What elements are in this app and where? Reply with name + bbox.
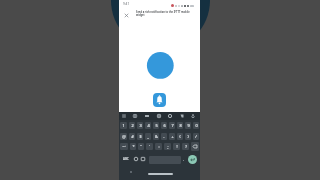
button[interactable]: Emoji bbox=[134, 157, 138, 161]
button[interactable]: ' bbox=[146, 143, 153, 150]
staticText: Send a rich notification to the IFTTT mo… bbox=[136, 10, 192, 16]
staticText: 6 bbox=[163, 123, 166, 128]
button[interactable]: - bbox=[161, 133, 167, 140]
staticText: : bbox=[158, 144, 160, 149]
button[interactable]: ? bbox=[182, 143, 189, 150]
staticText: * bbox=[132, 144, 135, 149]
staticText: + bbox=[171, 134, 174, 139]
button[interactable]: Enter bbox=[188, 155, 197, 164]
button[interactable]: Keyboard tool 6 bbox=[180, 114, 184, 118]
staticText: ; bbox=[167, 144, 169, 149]
staticText: 9 bbox=[187, 123, 190, 128]
button[interactable]: @ bbox=[120, 133, 127, 140]
staticText: 8 bbox=[179, 123, 182, 128]
button[interactable]: + bbox=[169, 133, 175, 140]
button[interactable]: $ bbox=[137, 133, 143, 140]
button[interactable]: " bbox=[138, 143, 144, 150]
button[interactable]: . bbox=[183, 157, 184, 162]
staticText: # bbox=[131, 134, 134, 139]
staticText: ? bbox=[185, 144, 187, 149]
staticText: ' bbox=[149, 144, 150, 149]
button[interactable]: ABC bbox=[123, 157, 129, 161]
button[interactable]: Keyboard tool 5 bbox=[168, 114, 172, 118]
button[interactable]: 7 bbox=[169, 122, 175, 129]
staticText: " bbox=[140, 144, 142, 149]
button[interactable]: & bbox=[153, 133, 159, 140]
button[interactable]: 0 bbox=[193, 122, 199, 129]
button[interactable]: _ bbox=[145, 133, 151, 140]
button[interactable]: 9 bbox=[185, 122, 191, 129]
button[interactable]: ! bbox=[173, 143, 180, 150]
button[interactable]: Keyboard tool 3 bbox=[145, 114, 149, 118]
button[interactable]: / bbox=[193, 133, 199, 140]
button[interactable]: Keyboard tool 2 bbox=[133, 114, 137, 118]
staticText: 1 bbox=[122, 123, 125, 128]
staticText: =\< bbox=[122, 145, 126, 148]
button[interactable]: 3 bbox=[137, 122, 143, 129]
staticText: _ bbox=[147, 134, 149, 139]
button[interactable]: Keyboard tool 4 bbox=[157, 114, 161, 118]
button[interactable]: 4 bbox=[145, 122, 151, 129]
staticText: ! bbox=[176, 144, 178, 149]
button[interactable]: Backspace bbox=[191, 142, 199, 151]
staticText: & bbox=[155, 134, 158, 139]
button[interactable]: * bbox=[130, 143, 136, 150]
button[interactable]: : bbox=[155, 143, 162, 150]
button[interactable]: ) bbox=[185, 133, 191, 140]
button[interactable]: 1 bbox=[120, 122, 127, 129]
staticText: 9:41 bbox=[123, 2, 130, 6]
staticText: $ bbox=[139, 134, 142, 139]
button[interactable]: =\< bbox=[120, 143, 128, 150]
staticText: 0 bbox=[195, 123, 198, 128]
button[interactable]: Close bbox=[121, 10, 132, 21]
button[interactable]: 6 bbox=[161, 122, 167, 129]
staticText: 3 bbox=[139, 123, 142, 128]
button[interactable]: 2 bbox=[129, 122, 135, 129]
button[interactable]: Notification app icon bbox=[153, 93, 166, 107]
staticText: 4 bbox=[147, 123, 150, 128]
button[interactable]: Keyboard tool 1 bbox=[122, 114, 126, 118]
staticText: ( bbox=[179, 134, 181, 139]
button[interactable]: Switch language bbox=[141, 157, 145, 161]
staticText: 5 bbox=[155, 123, 158, 128]
staticText: 7 bbox=[171, 123, 174, 128]
button[interactable]: Keyboard tool 7 bbox=[191, 114, 195, 118]
staticText: @ bbox=[122, 134, 126, 139]
button[interactable]: # bbox=[129, 133, 135, 140]
button[interactable]: 8 bbox=[177, 122, 183, 129]
button[interactable]: ; bbox=[164, 143, 171, 150]
staticText: / bbox=[195, 134, 197, 139]
staticText: ) bbox=[187, 134, 189, 139]
staticText: - bbox=[163, 134, 165, 139]
staticText: 2 bbox=[131, 123, 134, 128]
button[interactable]: 5 bbox=[153, 122, 159, 129]
button[interactable]: ( bbox=[177, 133, 183, 140]
